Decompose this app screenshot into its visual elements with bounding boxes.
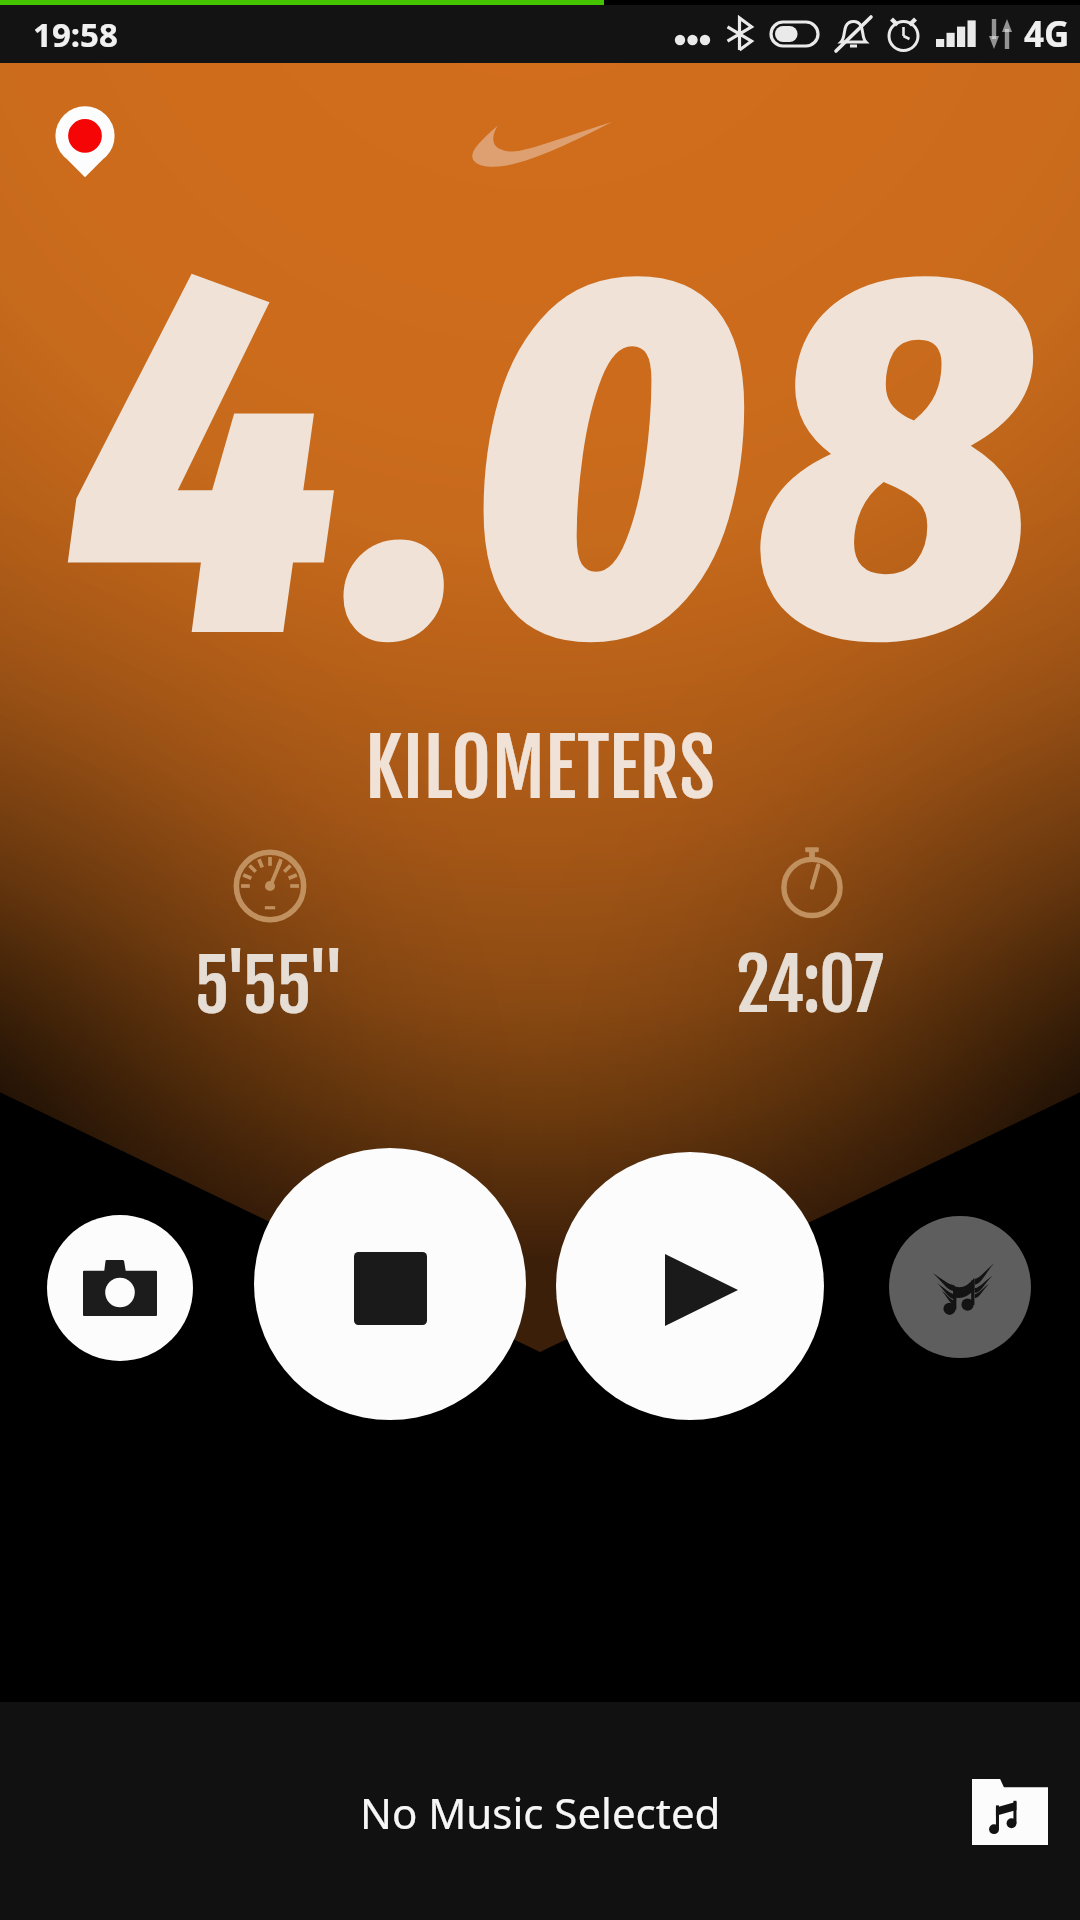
staticText: 5'55" [194,941,346,1030]
staticText: 4.08 [16,153,1080,767]
button[interactable]: Stop [254,1148,526,1420]
staticText: KILOMETERS [0,720,1080,817]
button[interactable]: Resume run [556,1152,824,1420]
staticText: 19:58 [33,12,118,57]
button[interactable]: GPS status [48,104,122,178]
staticText: 24:07 [736,940,884,1029]
staticText: No Music Selected [360,1784,721,1841]
button[interactable]: Music player [889,1216,1031,1358]
staticText: 4G [1024,10,1070,58]
button[interactable]: Choose music folder [962,1764,1058,1860]
button[interactable]: Camera [47,1215,193,1361]
